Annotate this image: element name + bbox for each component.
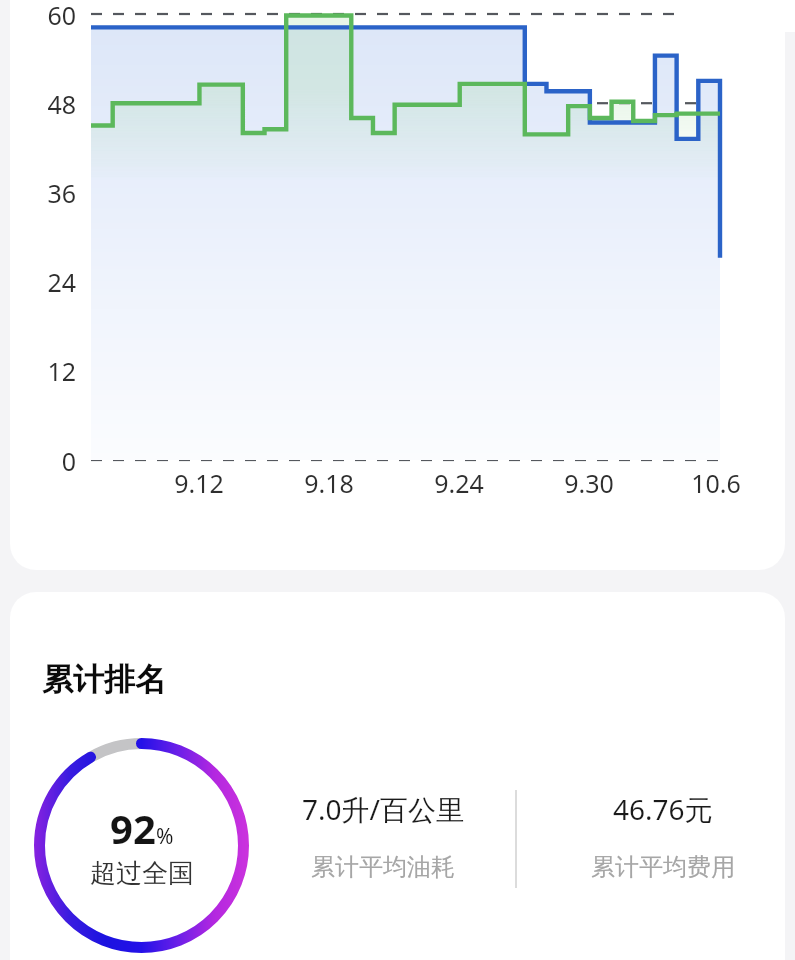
staticText: 12 [20,354,76,388]
staticText: 7.0升/百公里 [302,790,464,828]
staticText: 9.18 [284,466,374,500]
staticText: 9.12 [154,466,244,500]
staticText: 9.30 [544,466,634,500]
staticText: 60 [20,0,76,32]
staticText: 累计排名 [42,660,166,699]
staticText: 累计平均费用 [591,852,735,882]
staticText: 0 [20,444,76,478]
staticText: 9.24 [414,466,504,500]
staticText: 36 [20,176,76,210]
staticText: 92 [110,801,156,855]
staticText: 48 [20,87,76,121]
staticText: 46.76元 [613,790,713,828]
staticText: % [156,822,174,851]
staticText: 10.6 [671,466,761,500]
staticText: 24 [20,265,76,299]
staticText: 超过全国 [90,857,194,890]
staticText: 累计平均油耗 [311,852,455,882]
